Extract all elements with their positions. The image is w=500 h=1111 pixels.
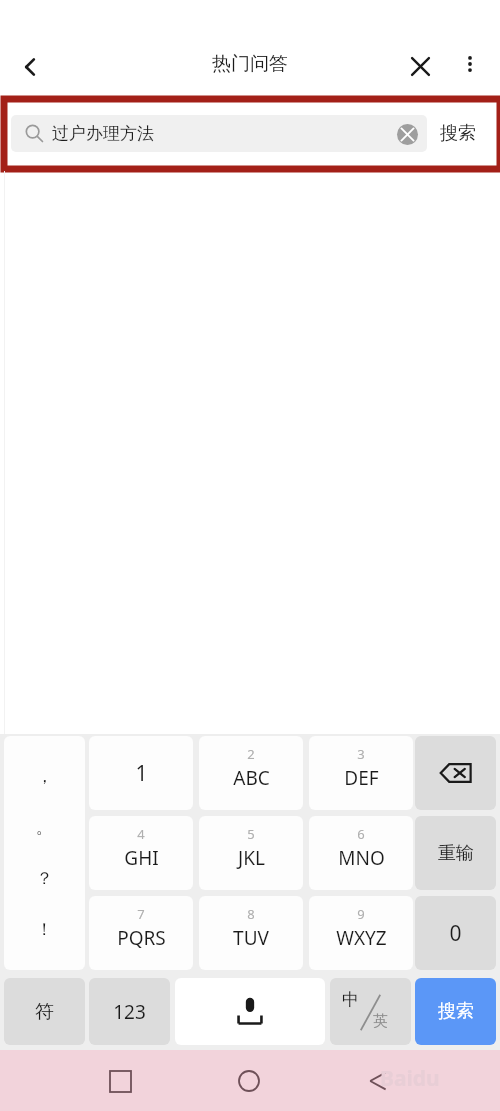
button[interactable]: 9 [309,896,413,970]
staticText: 6 [357,825,365,843]
button[interactable]: Close [398,44,442,88]
staticText: 5 [247,825,255,843]
button[interactable]: 0 [415,896,496,970]
button[interactable]: Voice input [175,978,325,1045]
button[interactable]: 5 [199,816,303,890]
button[interactable]: Recents [105,1066,135,1096]
staticText: 4 [137,825,145,843]
staticText: 重输 [438,842,474,865]
staticText: 符 [35,1000,54,1024]
staticText: 搜索 [440,122,476,145]
button[interactable]: 2 [199,736,303,810]
button[interactable]: 1 [89,736,193,810]
staticText: WXYZ [336,925,387,951]
button[interactable]: 6 [309,816,413,890]
staticText: JKL [238,845,265,871]
button[interactable]: 搜索 [427,106,489,160]
staticText: MNO [338,845,385,871]
button[interactable]: Delete [415,736,496,810]
staticText: 8 [247,905,255,923]
staticText: GHI [124,845,159,871]
button[interactable]: ， [4,736,85,970]
staticText: 0 [449,919,462,948]
staticText: ABC [233,765,270,791]
button[interactable]: 7 [89,896,193,970]
button[interactable]: 8 [199,896,303,970]
button[interactable]: 搜索 [415,978,496,1045]
staticText: ？ [36,868,53,889]
staticText: PQRS [117,925,166,951]
staticText: 热门问答 [212,52,288,76]
staticText: 7 [137,905,145,923]
button[interactable]: 3 [309,736,413,810]
button[interactable]: More options [450,44,490,84]
staticText: 搜索 [438,1000,474,1023]
button[interactable]: 中 [330,978,411,1045]
button[interactable]: Back [8,44,54,90]
staticText: ， [36,766,53,787]
button[interactable]: 重输 [415,816,496,890]
button[interactable]: 123 [89,978,170,1045]
staticText: 英 [373,1012,388,1031]
staticText: TUV [233,925,269,951]
staticText: ！ [36,919,53,940]
button[interactable]: Back [364,1066,394,1096]
button[interactable]: Clear text [395,122,419,146]
staticText: Baidu [380,1064,440,1093]
button[interactable]: 过户办理方法 [11,115,427,152]
button[interactable]: Home [234,1066,264,1096]
staticText: 过户办理方法 [52,123,154,144]
staticText: 3 [357,745,365,763]
staticText: 123 [113,999,146,1025]
button[interactable]: 符 [4,978,85,1045]
staticText: 9 [357,905,365,923]
staticText: 1 [135,759,148,788]
button[interactable]: 4 [89,816,193,890]
staticText: 2 [247,745,255,763]
staticText: 中 [342,989,359,1010]
staticText: 。 [36,817,53,838]
staticText: DEF [344,765,379,791]
